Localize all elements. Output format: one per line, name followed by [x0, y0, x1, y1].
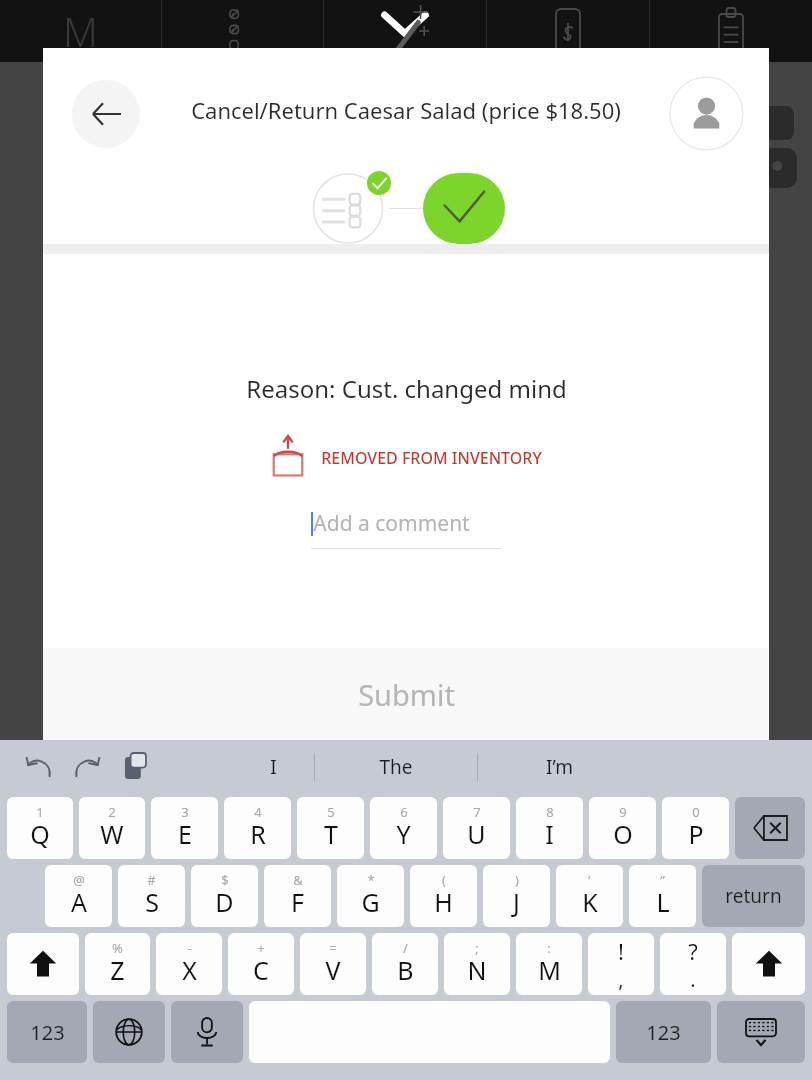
button[interactable]: ”	[629, 865, 696, 927]
button[interactable]: 8	[516, 797, 583, 859]
button[interactable]: :	[516, 933, 582, 995]
button[interactable]: Account	[669, 76, 744, 151]
staticText: =	[329, 939, 337, 957]
staticText: X	[182, 953, 197, 987]
button[interactable]	[423, 173, 505, 244]
button[interactable]: Redo	[70, 750, 104, 784]
button[interactable]: Shift	[732, 933, 805, 995]
staticText: G	[361, 885, 380, 919]
staticText: L	[656, 885, 670, 919]
staticText: ?	[688, 936, 698, 966]
button[interactable]: =	[300, 933, 366, 995]
button[interactable]: Change language	[93, 1001, 165, 1063]
button[interactable]: Voice input	[171, 1001, 243, 1063]
button[interactable]: 9	[589, 797, 656, 859]
staticText: N	[467, 953, 487, 987]
staticText: (	[442, 871, 446, 889]
button[interactable]: Add a comment	[311, 509, 501, 549]
staticText: T	[324, 817, 338, 851]
button[interactable]: I’m	[478, 740, 640, 794]
staticText: 8	[546, 803, 554, 821]
staticText: U	[467, 817, 486, 851]
staticText: S	[145, 885, 159, 919]
staticText: P	[688, 817, 704, 851]
button[interactable]: 0	[662, 797, 729, 859]
staticText: +	[257, 939, 265, 957]
staticText: E	[178, 817, 192, 851]
button[interactable]: +	[228, 933, 294, 995]
staticText: &	[293, 871, 303, 889]
button[interactable]: 5	[297, 797, 364, 859]
staticText: Y	[396, 817, 411, 851]
staticText: /	[403, 939, 408, 957]
staticText: C	[253, 953, 269, 987]
staticText: 123	[646, 1019, 681, 1046]
staticText: 7	[473, 803, 481, 821]
staticText: ”	[660, 871, 665, 889]
button[interactable]: 3	[151, 797, 218, 859]
button[interactable]: *	[337, 865, 404, 927]
staticText: 4	[254, 803, 262, 821]
staticText: )	[515, 871, 519, 889]
button[interactable]: ;	[444, 933, 510, 995]
staticText: 1	[36, 803, 44, 821]
staticText: M	[538, 953, 561, 987]
staticText: Z	[110, 953, 125, 987]
button[interactable]: 4	[224, 797, 291, 859]
staticText: J	[513, 885, 520, 919]
staticText: .	[690, 966, 696, 993]
button[interactable]: Undo	[22, 750, 56, 784]
button[interactable]: !	[588, 933, 654, 995]
staticText: I	[270, 754, 277, 780]
button[interactable]: &	[264, 865, 331, 927]
button[interactable]: Shift	[7, 933, 79, 995]
staticText: %	[112, 939, 123, 957]
button[interactable]: )	[483, 865, 550, 927]
button[interactable]: /	[372, 933, 438, 995]
button[interactable]: ?	[660, 933, 726, 995]
button[interactable]: 123	[7, 1001, 87, 1063]
button[interactable]: return	[702, 865, 805, 927]
staticText: Q	[30, 817, 50, 851]
button[interactable]: %	[85, 933, 150, 995]
button[interactable]: The	[315, 740, 477, 794]
staticText: 2	[108, 803, 116, 821]
staticText: 9	[619, 803, 627, 821]
button[interactable]: I	[232, 740, 314, 794]
button[interactable]: #	[118, 865, 185, 927]
button[interactable]: 2	[79, 797, 145, 859]
staticText: M	[63, 4, 98, 58]
staticText: @	[73, 871, 85, 889]
staticText: D	[215, 885, 234, 919]
button[interactable]: -	[156, 933, 222, 995]
button[interactable]: Hide keyboard	[717, 1001, 805, 1063]
staticText: H	[434, 885, 453, 919]
staticText: Add a comment	[313, 509, 470, 538]
staticText: -	[187, 939, 192, 957]
button[interactable]: Back	[72, 80, 140, 148]
button[interactable]: Paste	[118, 750, 152, 784]
button[interactable]: 6	[370, 797, 437, 859]
staticText: REMOVED FROM INVENTORY	[321, 447, 542, 469]
staticText: 6	[400, 803, 408, 821]
button[interactable]: ’	[556, 865, 623, 927]
button[interactable]: 1	[7, 797, 73, 859]
staticText: ’	[588, 871, 591, 889]
button[interactable]: 123	[616, 1001, 711, 1063]
staticText: I	[545, 817, 554, 851]
button[interactable]: Submit	[43, 648, 769, 740]
staticText: :	[547, 939, 551, 957]
staticText: A	[71, 885, 87, 919]
staticText: ,	[618, 966, 624, 993]
button[interactable]: Backspace	[735, 797, 805, 859]
staticText: return	[725, 883, 782, 909]
button[interactable]: (	[410, 865, 477, 927]
button[interactable]: 7	[443, 797, 510, 859]
staticText: 5	[327, 803, 335, 821]
button[interactable]: $	[191, 865, 258, 927]
staticText: !	[618, 936, 624, 966]
staticText: V	[325, 953, 341, 987]
button[interactable]: @	[45, 865, 112, 927]
button[interactable]: REMOVED FROM INVENTORY	[271, 435, 542, 481]
